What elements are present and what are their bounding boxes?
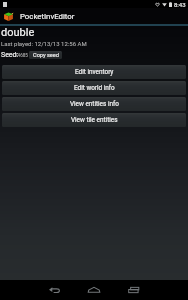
button[interactable]: Edit inventory [2,65,186,79]
staticText: 44685 [15,53,28,58]
staticText: 8:43 [174,1,186,8]
staticText: Copy seed [33,52,59,59]
staticText: View entities info [70,100,119,108]
button[interactable]: View tile entities [2,113,186,127]
staticText: Edit inventory [75,68,114,76]
button[interactable]: Edit world info [2,81,186,95]
staticText: Seed: [1,51,19,59]
button[interactable]: Copy seed [29,51,62,59]
staticText: View tile entities [71,116,118,124]
staticText: Edit world info [74,84,115,92]
staticText: Last played: 12/13/13 12:56 AM [1,40,87,47]
button[interactable]: Back [44,280,64,300]
button[interactable]: View entities info [2,97,186,111]
button[interactable]: Home [84,280,104,300]
staticText: double [1,26,35,39]
button[interactable]: Recent apps [124,280,144,300]
staticText: PocketInvEditor [20,12,75,21]
